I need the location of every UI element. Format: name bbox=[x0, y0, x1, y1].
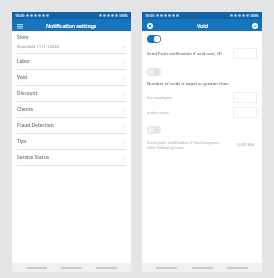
button[interactable]: Disabled toggle bbox=[147, 126, 161, 134]
staticText: Send Push notification if void over, ($) bbox=[147, 51, 229, 57]
button[interactable]: Labor bbox=[12, 54, 131, 69]
button[interactable]: Fraud Detection bbox=[12, 118, 131, 133]
staticText: Fraud Detection bbox=[17, 122, 122, 129]
staticText: Void bbox=[197, 22, 208, 29]
button[interactable]: Sixonfold 1111 12222 bbox=[17, 44, 126, 50]
button[interactable]: Checks bbox=[12, 102, 131, 117]
staticText: Send push notification if Void happens a… bbox=[147, 140, 229, 150]
button[interactable]: Enabled toggle bbox=[147, 35, 161, 43]
staticText: 100% bbox=[119, 13, 128, 18]
staticText: for employee bbox=[147, 95, 229, 100]
button[interactable]: Disabled toggle bbox=[147, 68, 161, 76]
staticText: entire store bbox=[147, 110, 229, 115]
staticText: Service Status bbox=[17, 154, 122, 161]
button[interactable]: Value input bbox=[233, 48, 257, 59]
staticText: Notification settings bbox=[46, 22, 97, 29]
staticText: Store bbox=[17, 34, 29, 40]
button[interactable]: Value input bbox=[233, 92, 257, 103]
staticText: Number of voids is equal or greater than bbox=[147, 81, 229, 87]
staticText: Labor bbox=[17, 58, 122, 65]
button[interactable]: Open navigation menu bbox=[15, 21, 24, 30]
button[interactable]: 12:00 AM bbox=[233, 139, 257, 150]
staticText: Tips bbox=[17, 138, 122, 145]
staticText: Sixonfold 1111 12222 bbox=[17, 44, 122, 50]
button[interactable]: Close bbox=[145, 21, 154, 30]
button[interactable]: Service Status bbox=[12, 150, 131, 165]
button[interactable]: Discount bbox=[12, 86, 131, 101]
staticText: 100% bbox=[250, 13, 259, 18]
button[interactable]: Value input bbox=[233, 107, 257, 118]
button[interactable]: Save bbox=[250, 21, 259, 30]
staticText: 10:30 bbox=[145, 13, 155, 18]
staticText: 10:30 bbox=[15, 13, 25, 18]
staticText: Void bbox=[17, 74, 122, 81]
staticText: 12:00 AM bbox=[236, 142, 255, 148]
staticText: Discount bbox=[17, 90, 122, 97]
button[interactable]: Void bbox=[12, 70, 131, 85]
staticText: Checks bbox=[17, 106, 122, 113]
button[interactable]: Tips bbox=[12, 134, 131, 149]
